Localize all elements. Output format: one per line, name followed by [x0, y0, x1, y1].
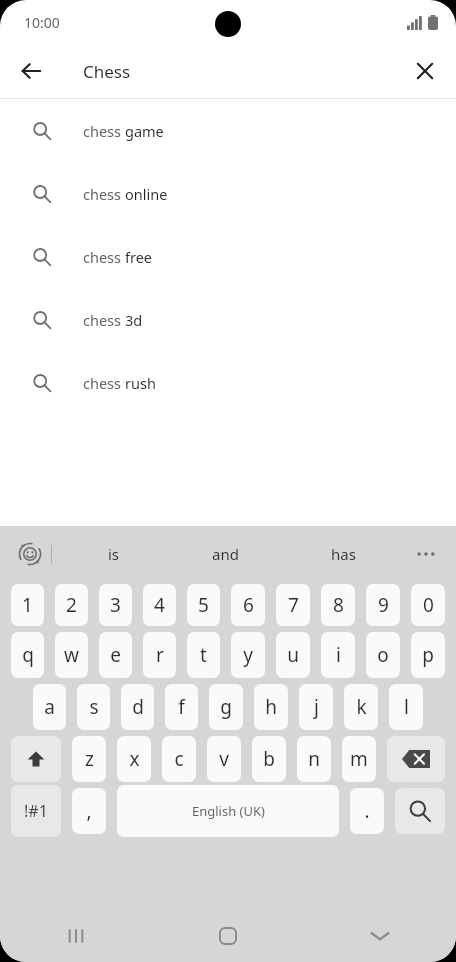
staticText: 2: [66, 592, 77, 618]
staticText: u: [287, 642, 299, 668]
button[interactable]: Backspace: [387, 736, 445, 782]
staticText: y: [243, 642, 253, 668]
button[interactable]: 7: [276, 584, 310, 626]
staticText: g: [220, 694, 232, 720]
staticText: chess: [83, 247, 125, 267]
button[interactable]: chess: [0, 288, 456, 351]
button[interactable]: !#1: [11, 785, 61, 837]
button[interactable]: chess: [0, 351, 456, 414]
button[interactable]: Search: [395, 788, 445, 834]
button[interactable]: s: [77, 684, 110, 730]
staticText: chess: [83, 373, 125, 393]
staticText: t: [200, 642, 207, 668]
button[interactable]: Home: [152, 910, 304, 962]
staticText: l: [404, 694, 409, 720]
button[interactable]: is: [94, 538, 134, 570]
staticText: Chess: [83, 60, 131, 83]
button[interactable]: d: [121, 684, 154, 730]
button[interactable]: 0: [411, 584, 445, 626]
button[interactable]: English (UK): [117, 785, 339, 837]
button[interactable]: t: [187, 632, 220, 678]
button[interactable]: ,: [72, 788, 106, 834]
button[interactable]: r: [143, 632, 176, 678]
staticText: p: [422, 642, 434, 668]
staticText: 7: [288, 592, 299, 618]
button[interactable]: Clear search: [403, 49, 447, 93]
button[interactable]: v: [207, 736, 241, 782]
staticText: 6: [243, 592, 254, 618]
button[interactable]: c: [162, 736, 196, 782]
staticText: x: [129, 746, 140, 772]
button[interactable]: and: [198, 538, 253, 570]
staticText: e: [110, 642, 121, 668]
button[interactable]: h: [254, 684, 288, 730]
staticText: 0: [423, 592, 434, 618]
button[interactable]: a: [33, 684, 66, 730]
button[interactable]: Emoji: [12, 536, 48, 572]
staticText: 9: [378, 592, 389, 618]
button[interactable]: Shift: [11, 736, 61, 782]
button[interactable]: w: [55, 632, 88, 678]
button[interactable]: More options: [410, 538, 442, 570]
button[interactable]: k: [344, 684, 378, 730]
button[interactable]: 4: [143, 584, 176, 626]
button[interactable]: o: [366, 632, 400, 678]
staticText: n: [308, 746, 320, 772]
staticText: o: [377, 642, 389, 668]
button[interactable]: f: [165, 684, 198, 730]
staticText: chess: [83, 184, 125, 204]
button[interactable]: Hide keyboard: [304, 910, 456, 962]
staticText: m: [350, 746, 368, 772]
staticText: has: [331, 544, 356, 564]
button[interactable]: i: [321, 632, 355, 678]
button[interactable]: .: [350, 788, 384, 834]
staticText: ,: [86, 798, 92, 824]
button[interactable]: z: [72, 736, 106, 782]
staticText: b: [263, 746, 275, 772]
staticText: game: [125, 121, 164, 141]
button[interactable]: 1: [11, 584, 44, 626]
staticText: 3: [110, 592, 121, 618]
staticText: d: [132, 694, 144, 720]
staticText: !#1: [24, 800, 48, 822]
staticText: j: [314, 694, 319, 720]
button[interactable]: 9: [366, 584, 400, 626]
button[interactable]: 3: [99, 584, 132, 626]
button[interactable]: g: [209, 684, 243, 730]
staticText: v: [219, 746, 229, 772]
staticText: is: [108, 544, 120, 564]
staticText: z: [85, 746, 94, 772]
button[interactable]: l: [389, 684, 423, 730]
button[interactable]: 5: [187, 584, 220, 626]
staticText: .: [364, 798, 370, 824]
button[interactable]: chess: [0, 162, 456, 225]
button[interactable]: 2: [55, 584, 88, 626]
button[interactable]: q: [11, 632, 44, 678]
button[interactable]: 6: [231, 584, 265, 626]
staticText: 3d: [125, 310, 143, 330]
button[interactable]: y: [231, 632, 265, 678]
staticText: chess: [83, 310, 125, 330]
button[interactable]: 8: [321, 584, 355, 626]
button[interactable]: x: [117, 736, 151, 782]
button[interactable]: chess: [0, 225, 456, 288]
button[interactable]: Back: [9, 49, 53, 93]
staticText: w: [64, 642, 79, 668]
staticText: and: [212, 544, 239, 564]
staticText: 8: [333, 592, 344, 618]
button[interactable]: u: [276, 632, 310, 678]
staticText: 5: [198, 592, 209, 618]
button[interactable]: j: [299, 684, 333, 730]
button[interactable]: b: [252, 736, 286, 782]
button[interactable]: p: [411, 632, 445, 678]
button[interactable]: n: [297, 736, 331, 782]
button[interactable]: chess: [0, 99, 456, 162]
staticText: s: [89, 694, 99, 720]
button[interactable]: has: [317, 538, 370, 570]
staticText: 4: [154, 592, 165, 618]
staticText: a: [44, 694, 55, 720]
button[interactable]: Recents: [0, 910, 152, 962]
staticText: chess: [83, 121, 125, 141]
button[interactable]: m: [342, 736, 376, 782]
button[interactable]: e: [99, 632, 132, 678]
